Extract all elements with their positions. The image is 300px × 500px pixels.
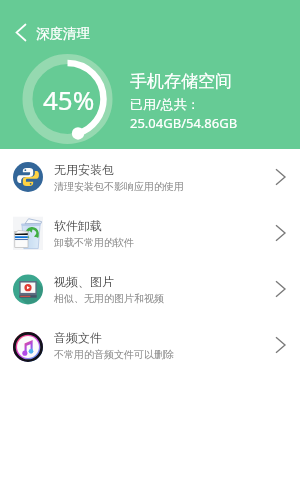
staticText: 相似、无用的图片和视频 bbox=[54, 292, 164, 305]
staticText: 不常用的音频文件可以删除 bbox=[54, 348, 174, 361]
staticText: 清理安装包不影响应用的使用 bbox=[54, 180, 184, 193]
button[interactable]: 音频文件 bbox=[0, 317, 300, 373]
staticText: 音频文件 bbox=[54, 330, 102, 345]
staticText: 45% bbox=[43, 82, 95, 117]
button[interactable]: 软件卸载 bbox=[0, 205, 300, 261]
button[interactable]: Back bbox=[13, 23, 33, 43]
staticText: 无用安装包 bbox=[54, 162, 114, 177]
staticText: 25.04GB/54.86GB bbox=[130, 114, 238, 132]
button[interactable]: 视频、图片 bbox=[0, 261, 300, 317]
staticText: 已用/总共： bbox=[130, 95, 200, 113]
staticText: 手机存储空间 bbox=[130, 71, 232, 92]
button[interactable]: 无用安装包 bbox=[0, 149, 300, 205]
staticText: 深度清理 bbox=[36, 25, 90, 42]
staticText: 软件卸载 bbox=[54, 218, 102, 233]
staticText: 视频、图片 bbox=[54, 274, 114, 289]
staticText: 卸载不常用的软件 bbox=[54, 236, 134, 249]
